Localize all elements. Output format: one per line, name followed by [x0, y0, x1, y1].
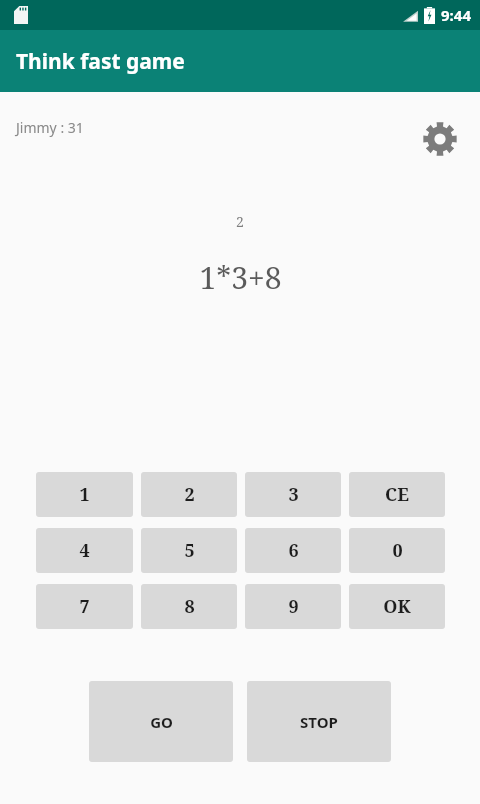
staticText: 6	[288, 538, 299, 563]
button[interactable]: 9	[245, 584, 341, 629]
button[interactable]: 3	[245, 472, 341, 517]
button[interactable]: 7	[36, 584, 133, 629]
staticText: 1	[79, 482, 90, 507]
button[interactable]: STOP	[247, 681, 391, 762]
button[interactable]: 1	[36, 472, 133, 517]
staticText: 2	[184, 482, 195, 507]
staticText: 7	[79, 594, 90, 619]
button[interactable]: 8	[141, 584, 237, 629]
staticText: 4	[79, 538, 90, 563]
staticText: STOP	[300, 712, 338, 732]
button[interactable]: Settings	[420, 119, 460, 159]
button[interactable]: 6	[245, 528, 341, 573]
staticText: 9	[288, 594, 299, 619]
staticText: 8	[184, 594, 195, 619]
staticText: Think fast game	[16, 47, 185, 76]
button[interactable]: GO	[89, 681, 233, 762]
staticText: 2	[236, 212, 244, 231]
staticText: 9:44	[441, 5, 471, 25]
button[interactable]: 5	[141, 528, 237, 573]
staticText: 3	[288, 482, 299, 507]
staticText: GO	[150, 712, 173, 732]
staticText: 1*3+8	[199, 257, 282, 298]
button[interactable]: 2	[141, 472, 237, 517]
staticText: Jimmy : 31	[16, 118, 84, 137]
staticText: OK	[383, 594, 411, 619]
staticText: 0	[392, 538, 403, 563]
button[interactable]: 0	[349, 528, 445, 573]
button[interactable]: CE	[349, 472, 445, 517]
button[interactable]: 4	[36, 528, 133, 573]
staticText: CE	[385, 482, 409, 507]
staticText: 5	[184, 538, 195, 563]
button[interactable]: OK	[349, 584, 445, 629]
